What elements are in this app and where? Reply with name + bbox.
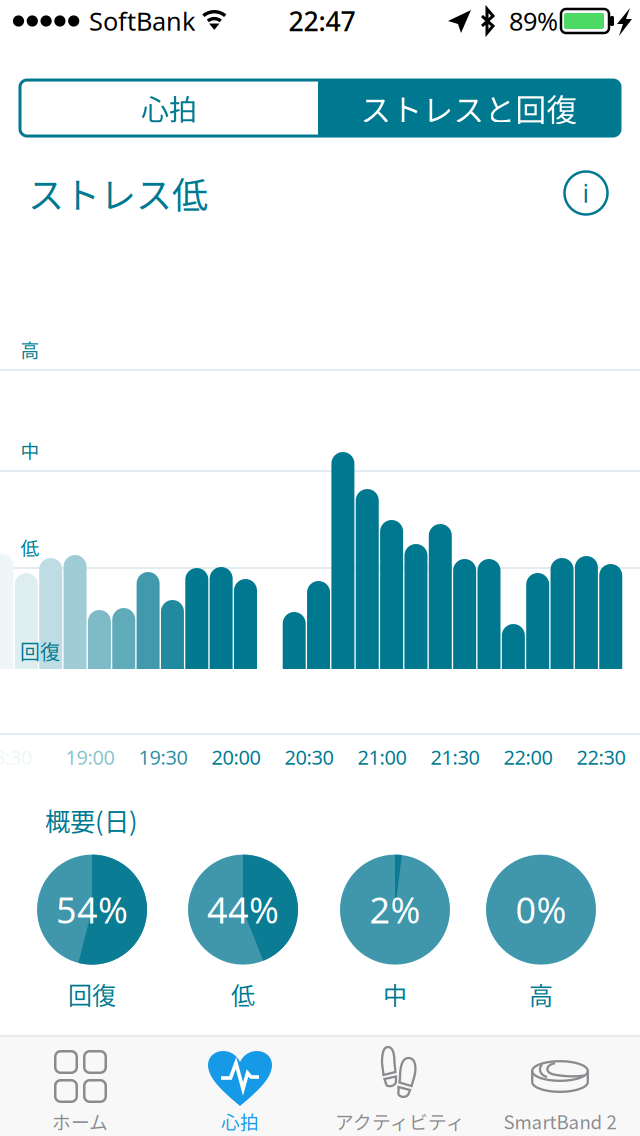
- staticText: 21:30: [430, 744, 479, 770]
- staticText: 低: [231, 977, 255, 1011]
- staticText: 19:30: [138, 744, 187, 770]
- staticText: 20:00: [211, 744, 260, 770]
- staticText: 概要(日): [45, 802, 138, 838]
- staticText: 22:30: [576, 744, 625, 770]
- staticText: 高: [529, 977, 553, 1011]
- button[interactable]: ストレスと回復: [318, 80, 620, 136]
- staticText: 0%: [515, 886, 566, 933]
- staticText: SoftBank: [89, 4, 196, 38]
- staticText: ストレス低: [28, 167, 208, 219]
- staticText: 中: [20, 436, 39, 463]
- staticText: 22:47: [288, 3, 355, 39]
- button[interactable]: SmartBand 2: [480, 1037, 640, 1136]
- staticText: 21:00: [357, 744, 406, 770]
- button[interactable]: 心拍: [20, 80, 318, 136]
- button[interactable]: 心拍: [160, 1037, 320, 1136]
- staticText: 心拍: [221, 1107, 259, 1134]
- staticText: 心拍: [141, 88, 197, 128]
- button[interactable]: ホーム: [0, 1037, 160, 1136]
- staticText: 22:00: [503, 744, 552, 770]
- staticText: 20:30: [284, 744, 333, 770]
- staticText: 中: [383, 977, 407, 1011]
- staticText: i: [582, 176, 589, 210]
- staticText: 19:00: [65, 744, 114, 770]
- button[interactable]: アクティビティ: [320, 1037, 480, 1136]
- staticText: ホーム: [52, 1107, 108, 1134]
- staticText: 回復: [68, 977, 116, 1011]
- staticText: アクティビティ: [335, 1107, 465, 1134]
- staticText: ストレスと回復: [360, 86, 577, 130]
- staticText: 89%: [509, 4, 558, 38]
- staticText: 高: [20, 335, 39, 362]
- button[interactable]: Info: [556, 163, 616, 223]
- staticText: 8:30: [0, 744, 32, 770]
- staticText: 44%: [207, 886, 279, 933]
- staticText: 2%: [369, 886, 420, 933]
- staticText: 54%: [56, 886, 128, 933]
- staticText: 回復: [20, 636, 60, 665]
- staticText: SmartBand 2: [503, 1107, 616, 1134]
- staticText: 低: [20, 533, 39, 560]
